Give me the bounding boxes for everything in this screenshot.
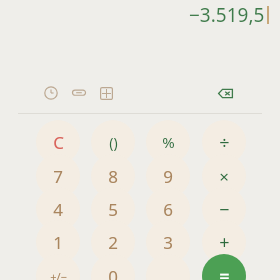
button[interactable]: 6 bbox=[146, 187, 190, 231]
button[interactable]: = bbox=[202, 254, 246, 280]
staticText: 8 bbox=[108, 165, 118, 188]
staticText: 6 bbox=[163, 198, 173, 221]
staticText: −3.519,5 bbox=[189, 2, 265, 28]
staticText: 9 bbox=[163, 165, 173, 188]
button[interactable]: 7 bbox=[36, 154, 80, 198]
button[interactable]: 3 bbox=[146, 220, 190, 264]
button[interactable]: 0 bbox=[91, 254, 135, 280]
staticText: 7 bbox=[53, 165, 63, 188]
button[interactable]: Keypad bbox=[97, 84, 115, 102]
staticText: − bbox=[219, 197, 230, 222]
staticText: 2 bbox=[108, 231, 118, 254]
button[interactable]: 5 bbox=[91, 187, 135, 231]
button[interactable]: History bbox=[42, 84, 60, 102]
button[interactable]: () bbox=[91, 120, 135, 164]
button[interactable]: % bbox=[146, 120, 190, 164]
button[interactable]: × bbox=[202, 154, 246, 198]
button[interactable]: 2 bbox=[91, 220, 135, 264]
button[interactable]: 4 bbox=[36, 187, 80, 231]
staticText: ÷ bbox=[219, 130, 230, 155]
button[interactable]: 1 bbox=[36, 220, 80, 264]
button[interactable]: Backspace bbox=[216, 84, 234, 102]
staticText: 1 bbox=[53, 231, 63, 254]
button[interactable]: ÷ bbox=[202, 120, 246, 164]
staticText: % bbox=[162, 132, 175, 152]
staticText: × bbox=[219, 165, 229, 188]
staticText: 0 bbox=[108, 265, 118, 280]
staticText: + bbox=[219, 230, 230, 255]
button[interactable]: − bbox=[202, 187, 246, 231]
staticText: 4 bbox=[53, 198, 63, 221]
staticText: () bbox=[109, 133, 118, 152]
button[interactable]: Memory bbox=[70, 84, 88, 102]
staticText: = bbox=[219, 264, 230, 280]
staticText: 5 bbox=[108, 198, 118, 221]
button[interactable]: +/− bbox=[36, 254, 80, 280]
button[interactable]: 9 bbox=[146, 154, 190, 198]
button[interactable]: 8 bbox=[91, 154, 135, 198]
button[interactable]: + bbox=[202, 220, 246, 264]
staticText: +/− bbox=[50, 269, 67, 280]
staticText: 3 bbox=[163, 231, 173, 254]
staticText: C bbox=[53, 131, 64, 154]
button[interactable]: C bbox=[36, 120, 80, 164]
